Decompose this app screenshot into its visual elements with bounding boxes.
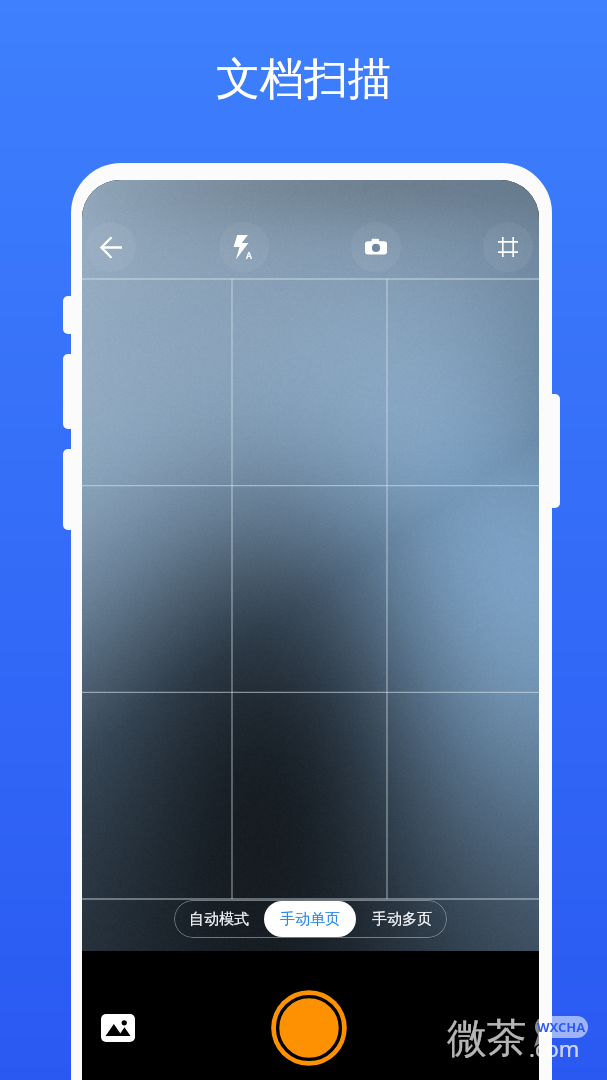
button[interactable]: 手动单页 — [264, 901, 356, 937]
button[interactable]: Back — [86, 222, 136, 272]
staticText: 自动模式 — [189, 910, 249, 929]
staticText: 微茶 — [447, 1013, 527, 1063]
button[interactable]: Grid — [483, 222, 533, 272]
staticText: A — [246, 249, 252, 261]
staticText: .com — [529, 1033, 580, 1063]
button[interactable]: Switch camera — [351, 222, 401, 272]
staticText: 手动单页 — [280, 910, 340, 929]
button[interactable]: Flash auto — [219, 222, 269, 272]
staticText: WXCHA — [537, 1018, 586, 1036]
button[interactable]: Gallery — [101, 1014, 135, 1042]
button[interactable]: 手动多页 — [356, 901, 447, 937]
staticText: 手动多页 — [372, 910, 432, 929]
button[interactable]: 自动模式 — [174, 901, 264, 937]
staticText: 文档扫描 — [216, 52, 392, 107]
button[interactable]: Shutter — [269, 988, 349, 1068]
